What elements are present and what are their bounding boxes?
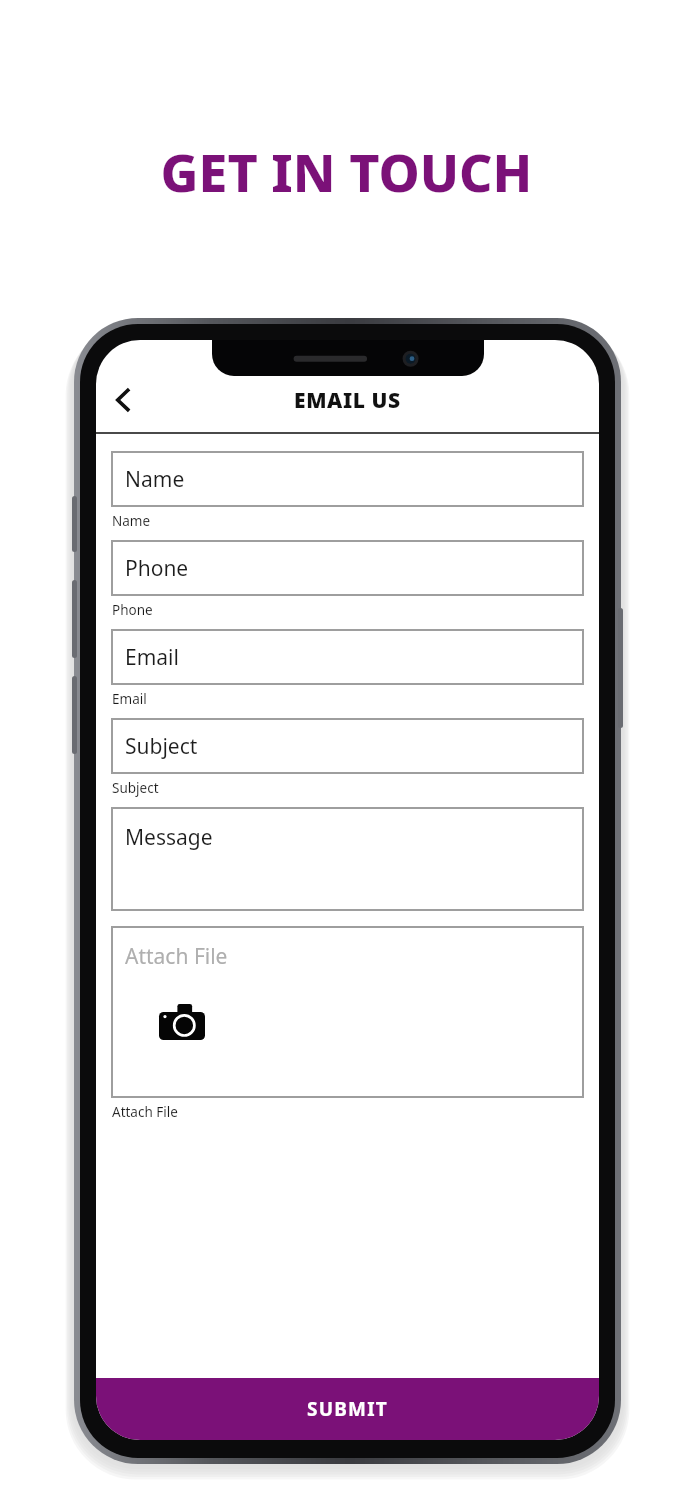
staticText: Phone xyxy=(125,554,189,583)
staticText: EMAIL US xyxy=(294,386,401,415)
button[interactable]: Back xyxy=(96,373,150,427)
button[interactable]: Phone xyxy=(111,540,584,596)
staticText: GET IN TOUCH xyxy=(0,136,693,207)
staticText: Phone xyxy=(112,601,153,619)
staticText: Email xyxy=(112,690,147,708)
staticText: Name xyxy=(125,465,185,494)
button[interactable]: Subject xyxy=(111,718,584,774)
button[interactable]: Message xyxy=(111,807,584,911)
staticText: Email xyxy=(125,643,179,672)
staticText: Name xyxy=(112,512,151,530)
button[interactable]: Name xyxy=(111,451,584,507)
staticText: Attach File xyxy=(112,1103,178,1121)
button[interactable]: Attach File xyxy=(111,926,584,1098)
staticText: Subject xyxy=(125,732,198,761)
button[interactable]: Take photo xyxy=(159,1004,205,1040)
staticText: SUBMIT xyxy=(307,1396,388,1422)
button[interactable]: Email xyxy=(111,629,584,685)
button[interactable]: SUBMIT xyxy=(96,1378,599,1440)
staticText: Attach File xyxy=(125,942,228,971)
staticText: Subject xyxy=(112,779,159,797)
staticText: Message xyxy=(125,823,213,852)
